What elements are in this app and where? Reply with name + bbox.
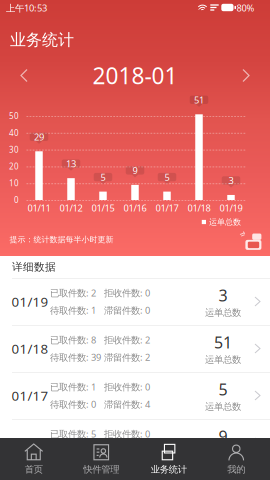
staticText: 拒收件数: 0 (104, 381, 150, 393)
staticText: 40 (9, 127, 19, 138)
staticText: 运单总数 (205, 307, 241, 318)
staticText: 29 (34, 131, 44, 143)
staticText: 已取件数: 5 (50, 428, 96, 440)
staticText: 01/19 (11, 293, 48, 310)
button[interactable]: 下一月 (227, 62, 265, 88)
staticText: 51 (194, 94, 204, 106)
staticText: 滞留件数: 0 (104, 445, 150, 457)
staticText: 10 (9, 178, 19, 188)
button[interactable]: 首页 (0, 438, 67, 480)
staticText: 01/12 (59, 202, 82, 214)
staticText: 业务统计 (151, 464, 187, 475)
staticText: 30 (9, 144, 19, 155)
staticText: 3 (218, 285, 227, 306)
button[interactable]: 快件管理 (67, 438, 135, 480)
staticText: 上午10:53 (6, 2, 47, 14)
staticText: 9 (132, 164, 137, 177)
staticText: 01/16 (123, 202, 146, 214)
staticText: 01/17 (155, 202, 178, 214)
staticText: 提示：统计数据每半小时更新 (9, 235, 113, 244)
staticText: 待取件数: 1 (50, 304, 96, 316)
staticText: 运单总数 (209, 217, 241, 227)
button[interactable]: 打印 (240, 228, 262, 250)
staticText: 快件管理 (83, 464, 119, 475)
staticText: 待取件数: 0 (50, 445, 96, 457)
staticText: 拒收件数: 0 (104, 428, 150, 440)
button[interactable]: 业务统计 (135, 438, 202, 480)
staticText: 滞留件数: 0 (104, 304, 150, 316)
staticText: 滞留件数: 2 (104, 351, 150, 363)
staticText: 01/19 (219, 202, 242, 214)
staticText: 80% (236, 2, 254, 14)
staticText: 51 (214, 332, 232, 353)
staticText: 运单总数 (205, 401, 241, 412)
staticText: 运单总数 (205, 354, 241, 365)
staticText: 2018-01 (92, 60, 177, 90)
staticText: 3 (228, 174, 233, 187)
button[interactable]: 上一月 (5, 62, 43, 88)
staticText: 拒收件数: 0 (104, 287, 150, 299)
staticText: 5 (164, 171, 169, 183)
staticText: 已取件数: 2 (50, 287, 96, 299)
staticText: 01/18 (11, 340, 48, 357)
staticText: 9 (218, 426, 227, 447)
staticText: 我的 (227, 464, 245, 475)
staticText: 5 (218, 379, 227, 400)
staticText: 已取件数: 8 (50, 334, 96, 346)
staticText: 运单总数 (205, 448, 241, 459)
button[interactable]: 01/16 (0, 419, 270, 466)
staticText: 首页 (25, 464, 43, 475)
staticText: 待取件数: 39 (50, 351, 101, 363)
staticText: 详细数据 (12, 260, 56, 273)
staticText: 滞留件数: 4 (104, 398, 150, 410)
button[interactable]: 01/18 (0, 325, 270, 372)
button[interactable]: 01/19 (0, 278, 270, 325)
staticText: 业务统计 (10, 30, 74, 50)
button[interactable]: 我的 (202, 438, 270, 480)
staticText: 13 (66, 157, 76, 170)
staticText: 01/15 (91, 202, 114, 214)
staticText: 已取件数: 1 (50, 381, 96, 393)
staticText: 01/18 (187, 202, 210, 214)
staticText: 拒收件数: 2 (104, 334, 150, 346)
staticText: 01/17 (11, 387, 48, 404)
staticText: 50 (9, 111, 19, 121)
staticText: 01/16 (11, 434, 48, 451)
staticText: 20 (9, 161, 19, 172)
button[interactable]: 01/17 (0, 372, 270, 419)
staticText: 0 (14, 195, 19, 205)
staticText: 01/11 (27, 202, 50, 214)
staticText: 待取件数: 0 (50, 398, 96, 410)
staticText: 5 (100, 171, 105, 183)
